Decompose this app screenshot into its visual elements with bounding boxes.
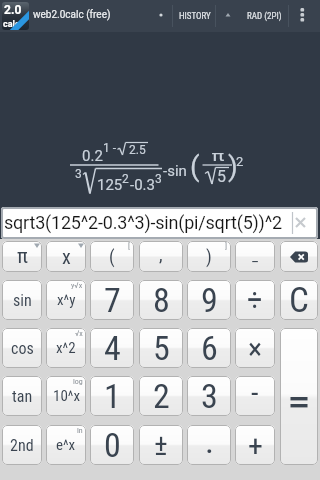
staticText: 3 bbox=[201, 376, 218, 416]
staticText: ) bbox=[206, 246, 212, 267]
button[interactable]: 4 bbox=[90, 328, 134, 368]
staticText: 6 bbox=[201, 328, 218, 368]
button[interactable]: RAD (2PI) bbox=[240, 0, 288, 32]
staticText: tan bbox=[12, 387, 33, 406]
button[interactable] bbox=[280, 328, 318, 465]
button[interactable]: 2nd bbox=[2, 425, 42, 465]
button[interactable]: 3 bbox=[187, 376, 231, 416]
staticText: π bbox=[212, 148, 225, 164]
button[interactable]: sin bbox=[2, 280, 42, 320]
staticText: ± bbox=[154, 428, 168, 462]
staticText: 2 bbox=[153, 376, 170, 416]
button[interactable]: 10^x bbox=[46, 376, 86, 416]
button[interactable]: sqrt3(125^2-0.3^3)-sin(pi/sqrt(5))^2 bbox=[1, 207, 318, 239]
button[interactable]: ± bbox=[139, 425, 183, 465]
staticText: C bbox=[289, 280, 309, 320]
staticText: 3 bbox=[155, 172, 162, 186]
staticText: web2.0calc (free) bbox=[33, 9, 111, 21]
staticText: 0.2 bbox=[82, 147, 103, 165]
button[interactable]: _ bbox=[235, 241, 275, 272]
button[interactable]: x^2 bbox=[46, 328, 86, 368]
button[interactable]: , bbox=[139, 241, 183, 272]
staticText: cos bbox=[11, 339, 34, 358]
staticText: 9 bbox=[201, 280, 218, 320]
staticText: ln bbox=[77, 426, 83, 435]
button[interactable]: ) bbox=[187, 241, 231, 272]
staticText: _ bbox=[252, 247, 259, 265]
staticText: 125 bbox=[97, 176, 123, 194]
staticText: + bbox=[248, 428, 263, 463]
staticText: 2 bbox=[122, 172, 129, 186]
staticText: ÷ bbox=[247, 282, 263, 318]
staticText: √x bbox=[75, 329, 83, 338]
staticText: ( bbox=[109, 246, 115, 267]
staticText: -0.3 bbox=[130, 176, 155, 194]
button[interactable]: 7 bbox=[90, 280, 134, 320]
staticText: x^y bbox=[57, 291, 76, 309]
button[interactable]: 0 bbox=[90, 425, 134, 465]
staticText: 5 bbox=[217, 167, 226, 186]
button[interactable]: e^x bbox=[46, 425, 86, 465]
staticText: [ bbox=[128, 242, 131, 251]
button[interactable]: 2.0 bbox=[2, 2, 29, 30]
button[interactable]: 1 bbox=[90, 376, 134, 416]
staticText: 10^x bbox=[53, 387, 80, 405]
button[interactable]: HISTORY bbox=[174, 0, 215, 32]
staticText: HISTORY bbox=[179, 11, 211, 22]
button[interactable]: 8 bbox=[139, 280, 183, 320]
button[interactable]: . bbox=[187, 425, 231, 465]
staticText: 3 bbox=[75, 167, 82, 181]
staticText: 8 bbox=[153, 280, 170, 320]
button[interactable]: ÷ bbox=[235, 280, 275, 320]
staticText: × bbox=[248, 331, 263, 366]
staticText: ) bbox=[228, 150, 238, 183]
button[interactable]: tan bbox=[2, 376, 42, 416]
staticText: , bbox=[159, 244, 163, 265]
button[interactable]: × bbox=[235, 328, 275, 368]
staticText: ] bbox=[225, 242, 228, 251]
button[interactable]: 6 bbox=[187, 328, 231, 368]
staticText: x bbox=[62, 245, 71, 268]
staticText: ( bbox=[190, 150, 200, 183]
staticText: 5 bbox=[153, 328, 170, 368]
button[interactable]: 2 bbox=[139, 376, 183, 416]
staticText: sin bbox=[13, 291, 32, 310]
staticText: log bbox=[73, 377, 83, 386]
staticText: - bbox=[251, 376, 259, 410]
staticText: 1 bbox=[104, 376, 121, 416]
staticText: π bbox=[17, 244, 28, 269]
staticText: 2.0 bbox=[4, 3, 22, 17]
staticText: -sin bbox=[163, 162, 187, 180]
button[interactable]: ( bbox=[90, 241, 134, 272]
staticText: 4 bbox=[104, 328, 121, 368]
staticText: y√x bbox=[71, 281, 83, 290]
staticText: 1 - bbox=[103, 141, 117, 155]
staticText: 2.5 bbox=[129, 143, 146, 157]
button[interactable]: + bbox=[235, 425, 275, 465]
button[interactable]: - bbox=[235, 376, 275, 416]
staticText: 2nd bbox=[10, 436, 34, 455]
staticText: 7 bbox=[104, 280, 121, 320]
staticText: 0 bbox=[104, 425, 121, 465]
staticText: RAD (2PI) bbox=[247, 11, 282, 22]
button[interactable]: cos bbox=[2, 328, 42, 368]
staticText: x^2 bbox=[56, 339, 76, 357]
button[interactable]: x^y bbox=[46, 280, 86, 320]
staticText: 2 bbox=[236, 154, 244, 169]
button[interactable]: 9 bbox=[187, 280, 231, 320]
staticText: calc bbox=[3, 19, 20, 30]
button[interactable]: 5 bbox=[139, 328, 183, 368]
staticText: sqrt3(125^2-0.3^3)-sin(pi/sqrt(5))^2 bbox=[4, 212, 282, 233]
button[interactable]: C bbox=[280, 280, 318, 320]
button[interactable] bbox=[280, 241, 318, 272]
staticText: e^x bbox=[56, 436, 76, 454]
button[interactable]: x bbox=[46, 241, 86, 272]
staticText: . bbox=[205, 425, 214, 461]
button[interactable]: π bbox=[2, 241, 42, 272]
